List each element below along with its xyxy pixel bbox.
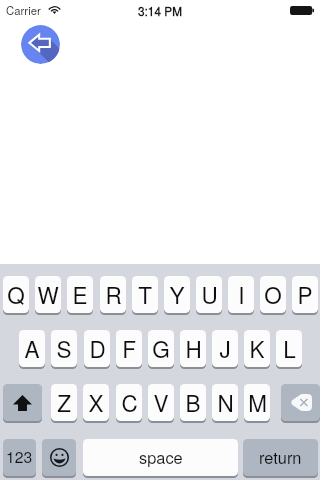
staticText: P [297, 278, 313, 310]
button[interactable]: J [212, 330, 238, 367]
staticText: U [201, 278, 218, 310]
button[interactable]: D [84, 330, 110, 367]
staticText: L [283, 332, 296, 364]
button[interactable]: T [132, 276, 158, 313]
staticText: E [72, 278, 88, 310]
other: Emoji keyboard [50, 448, 69, 467]
staticText: return [259, 445, 302, 468]
button[interactable]: X [83, 384, 109, 421]
staticText: M [248, 386, 267, 418]
button[interactable]: P [292, 276, 318, 313]
button[interactable]: E [67, 276, 93, 313]
staticText: D [89, 332, 106, 364]
button[interactable]: L [276, 330, 302, 367]
staticText: I [238, 278, 245, 310]
button[interactable]: N [212, 384, 238, 421]
staticText: F [122, 332, 136, 364]
button[interactable]: I [228, 276, 254, 313]
staticText: Y [169, 278, 185, 310]
staticText: C [121, 386, 138, 418]
staticText: Q [7, 278, 25, 310]
button[interactable]: O [260, 276, 286, 313]
staticText: V [153, 386, 169, 418]
button[interactable]: M [244, 384, 270, 421]
button[interactable]: Back [21, 25, 60, 64]
staticText: O [264, 278, 282, 310]
staticText: T [138, 278, 152, 310]
button[interactable]: Z [51, 384, 77, 421]
button[interactable]: W [35, 276, 61, 313]
staticText: H [185, 332, 202, 364]
button[interactable]: 123 [3, 439, 36, 476]
button[interactable]: K [244, 330, 270, 367]
button[interactable]: F [116, 330, 142, 367]
button[interactable]: space [83, 439, 238, 476]
staticText: G [152, 332, 170, 364]
other: Backspace [290, 394, 312, 411]
other: Shift [13, 395, 32, 411]
staticText: N [217, 386, 234, 418]
staticText: A [24, 332, 40, 364]
staticText: Z [57, 386, 71, 418]
staticText: S [56, 332, 72, 364]
button[interactable]: R [100, 276, 126, 313]
staticText: 123 [6, 445, 33, 468]
staticText: 3:14 PM [138, 2, 182, 19]
button[interactable]: Backspace [281, 384, 320, 421]
button[interactable]: Q [3, 276, 29, 313]
staticText: B [185, 386, 201, 418]
button[interactable]: A [19, 330, 45, 367]
staticText: Carrier [6, 2, 41, 18]
button[interactable]: Emoji keyboard [42, 439, 76, 476]
button[interactable]: Y [164, 276, 190, 313]
button[interactable]: V [148, 384, 174, 421]
staticText: X [88, 386, 104, 418]
staticText: K [249, 332, 265, 364]
button[interactable]: U [196, 276, 222, 313]
staticText: W [37, 278, 59, 310]
button[interactable]: Shift [3, 384, 42, 421]
button[interactable]: S [51, 330, 77, 367]
button[interactable]: return [243, 439, 318, 476]
staticText: space [139, 445, 183, 468]
button[interactable]: G [148, 330, 174, 367]
button[interactable]: B [180, 384, 206, 421]
staticText: J [219, 332, 231, 364]
button[interactable]: H [180, 330, 206, 367]
staticText: R [105, 278, 122, 310]
button[interactable]: C [116, 384, 142, 421]
